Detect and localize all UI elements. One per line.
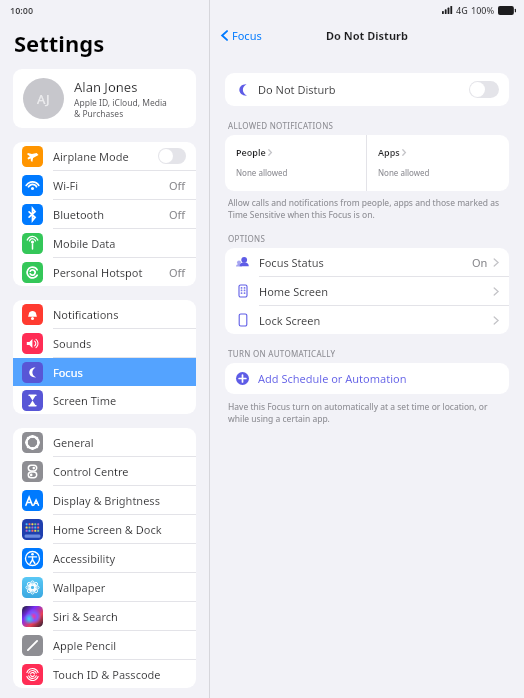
button[interactable]: Focus: [216, 25, 266, 46]
button[interactable]: Wallpaper: [13, 573, 196, 601]
staticText: Off: [169, 207, 186, 222]
staticText: Do Not Disturb: [258, 82, 469, 97]
staticText: Personal Hotspot: [53, 265, 169, 280]
staticText: 100%: [471, 4, 495, 16]
staticText: People: [236, 146, 266, 158]
button[interactable]: Sounds: [13, 329, 196, 357]
staticText: Off: [169, 265, 186, 280]
button[interactable]: Lock Screen: [225, 306, 509, 334]
staticText: OPTIONS: [228, 233, 266, 244]
staticText: Control Centre: [53, 464, 186, 479]
button[interactable]: General: [13, 428, 196, 456]
button[interactable]: Toggle: [469, 81, 499, 98]
staticText: Settings: [14, 28, 105, 58]
button[interactable]: Apple Pencil: [13, 631, 196, 659]
staticText: TURN ON AUTOMATICALLY: [228, 348, 336, 359]
staticText: Sounds: [53, 336, 186, 351]
staticText: Have this Focus turn on automatically at…: [228, 401, 488, 425]
button[interactable]: Notifications: [13, 300, 196, 328]
staticText: Apple Pencil: [53, 638, 186, 653]
button[interactable]: Personal Hotspot: [13, 258, 196, 286]
staticText: Apps: [378, 146, 400, 158]
staticText: Siri & Search: [53, 609, 186, 624]
button[interactable]: Display & Brightness: [13, 486, 196, 514]
button[interactable]: Touch ID & Passcode: [13, 660, 196, 688]
staticText: Bluetooth: [53, 207, 169, 222]
staticText: Screen Time: [53, 393, 186, 408]
staticText: Focus: [53, 365, 186, 380]
staticText: AJ: [37, 90, 50, 108]
staticText: Add Schedule or Automation: [258, 371, 407, 386]
staticText: Focus: [232, 28, 262, 43]
staticText: Notifications: [53, 307, 186, 322]
staticText: Focus Status: [259, 255, 472, 270]
staticText: Apple ID, iCloud, Media & Purchases: [74, 97, 167, 119]
staticText: Home Screen & Dock: [53, 522, 186, 537]
staticText: Accessibility: [53, 551, 186, 566]
staticText: Airplane Mode: [53, 149, 158, 164]
button[interactable]: Toggle: [158, 148, 186, 164]
staticText: On: [472, 255, 488, 270]
button[interactable]: Apps: [367, 135, 509, 191]
staticText: 10:00: [10, 4, 34, 16]
button[interactable]: Add Schedule or Automation: [225, 363, 509, 394]
button[interactable]: AJ: [13, 69, 196, 128]
button[interactable]: Focus Status: [225, 248, 509, 276]
staticText: Off: [169, 178, 186, 193]
staticText: Wallpaper: [53, 580, 186, 595]
button[interactable]: Airplane Mode: [13, 142, 196, 170]
button[interactable]: Do Not Disturb: [225, 73, 509, 106]
staticText: Display & Brightness: [53, 493, 186, 508]
staticText: Mobile Data: [53, 236, 186, 251]
button[interactable]: Home Screen: [225, 277, 509, 305]
staticText: General: [53, 435, 186, 450]
staticText: ALLOWED NOTIFICATIONS: [228, 120, 334, 131]
staticText: Do Not Disturb: [326, 28, 408, 43]
staticText: None allowed: [236, 167, 288, 178]
button[interactable]: Focus: [13, 358, 196, 386]
staticText: Allow calls and notifications from peopl…: [228, 197, 499, 221]
staticText: Wi-Fi: [53, 178, 169, 193]
staticText: None allowed: [378, 167, 430, 178]
button[interactable]: People: [225, 135, 366, 191]
button[interactable]: Mobile Data: [13, 229, 196, 257]
staticText: Lock Screen: [259, 313, 493, 328]
staticText: Touch ID & Passcode: [53, 667, 186, 682]
button[interactable]: Siri & Search: [13, 602, 196, 630]
button[interactable]: Control Centre: [13, 457, 196, 485]
staticText: Home Screen: [259, 284, 493, 299]
button[interactable]: Screen Time: [13, 386, 196, 414]
staticText: Alan Jones: [74, 78, 138, 96]
button[interactable]: Accessibility: [13, 544, 196, 572]
button[interactable]: Wi-Fi: [13, 171, 196, 199]
button[interactable]: Home Screen & Dock: [13, 515, 196, 543]
button[interactable]: Bluetooth: [13, 200, 196, 228]
staticText: 4G: [456, 4, 468, 16]
